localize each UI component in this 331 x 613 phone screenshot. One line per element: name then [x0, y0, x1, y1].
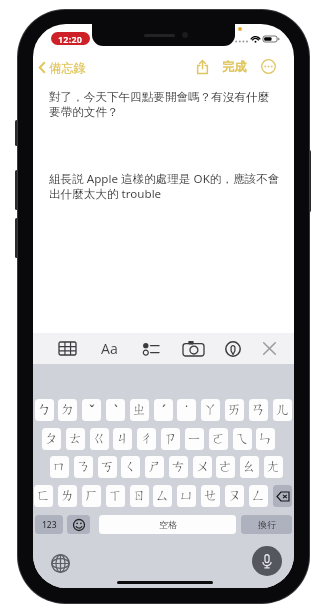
- button[interactable]: ㄙ: [153, 485, 172, 507]
- staticText: 完成: [222, 59, 247, 74]
- button[interactable]: ㄨ: [193, 456, 212, 478]
- button[interactable]: ㄕ: [145, 456, 164, 478]
- button[interactable]: ㄩ: [177, 485, 196, 507]
- button[interactable]: Dictation: [252, 546, 282, 576]
- button[interactable]: ˋ: [106, 399, 125, 421]
- button[interactable]: ㄏ: [82, 485, 101, 507]
- staticText: ˋ: [114, 401, 118, 420]
- staticText: ㄟ: [235, 430, 250, 448]
- staticText: ㄒ: [108, 487, 123, 505]
- button[interactable]: More options: [259, 57, 278, 76]
- staticText: ㄧ: [187, 430, 202, 448]
- staticText: ˊ: [162, 401, 166, 420]
- button[interactable]: ㄜ: [216, 456, 235, 478]
- staticText: ㄔ: [139, 430, 154, 448]
- button[interactable]: ㄝ: [201, 485, 220, 507]
- staticText: ㄛ: [211, 430, 226, 448]
- button[interactable]: 空格: [99, 515, 236, 534]
- staticText: ㄥ: [251, 487, 266, 505]
- button[interactable]: Checklist: [138, 336, 163, 361]
- button[interactable]: ㄡ: [225, 485, 244, 507]
- button[interactable]: ㄢ: [249, 399, 268, 421]
- button[interactable]: ˙: [177, 399, 196, 421]
- button[interactable]: ㄖ: [130, 485, 149, 507]
- staticText: 123: [42, 519, 57, 531]
- button[interactable]: ˇ: [82, 399, 101, 421]
- button[interactable]: ㄇ: [50, 456, 69, 478]
- staticText: ㄑ: [123, 458, 138, 476]
- staticText: 對了，今天下午四點要開會嗎？有沒有什麼 要帶的文件？: [49, 90, 270, 119]
- staticText: ㄌ: [60, 487, 75, 505]
- button[interactable]: ㄑ: [121, 456, 140, 478]
- button[interactable]: 123: [35, 515, 63, 534]
- button[interactable]: ㄈ: [34, 485, 53, 507]
- button[interactable]: ㄦ: [273, 399, 292, 421]
- button[interactable]: ㄔ: [137, 428, 156, 450]
- button[interactable]: 換行: [241, 515, 292, 534]
- staticText: ㄤ: [266, 458, 281, 476]
- button[interactable]: ㄒ: [106, 485, 125, 507]
- staticText: ㄩ: [179, 487, 194, 505]
- staticText: 12:20: [58, 33, 83, 45]
- button[interactable]: ˊ: [154, 399, 173, 421]
- button[interactable]: 備忘錄: [39, 58, 86, 76]
- staticText: ㄢ: [251, 401, 266, 419]
- staticText: Aa: [101, 339, 118, 358]
- button[interactable]: Camera: [181, 336, 206, 361]
- button[interactable]: ㄧ: [185, 428, 204, 450]
- staticText: ㄡ: [227, 487, 242, 505]
- staticText: ㄉ: [60, 401, 75, 419]
- button[interactable]: ㄣ: [256, 428, 275, 450]
- staticText: ㄓ: [132, 401, 147, 419]
- staticText: ㄖ: [132, 487, 147, 505]
- staticText: ㄗ: [163, 430, 178, 448]
- staticText: ㄞ: [227, 401, 242, 419]
- button[interactable]: ㄍ: [90, 428, 109, 450]
- button[interactable]: Markup: [220, 336, 245, 361]
- staticText: ˇ: [89, 401, 95, 420]
- button[interactable]: ㄌ: [58, 485, 77, 507]
- staticText: ㄊ: [68, 430, 83, 448]
- button[interactable]: ㄆ: [42, 428, 61, 450]
- staticText: ㄝ: [203, 487, 218, 505]
- button[interactable]: Switch keyboard: [50, 553, 70, 573]
- button[interactable]: Share: [193, 57, 212, 76]
- staticText: ㄍ: [92, 430, 107, 448]
- staticText: ㄈ: [36, 487, 51, 505]
- button[interactable]: ㄗ: [161, 428, 180, 450]
- button[interactable]: Table: [55, 336, 80, 361]
- staticText: ㄜ: [218, 458, 233, 476]
- staticText: ㄘ: [171, 458, 186, 476]
- button[interactable]: ㄅ: [35, 399, 54, 421]
- button[interactable]: ㄚ: [201, 399, 220, 421]
- staticText: 換行: [258, 519, 276, 530]
- button[interactable]: Close toolbar: [257, 336, 282, 361]
- staticText: ㄣ: [258, 430, 273, 448]
- button[interactable]: ㄊ: [66, 428, 85, 450]
- staticText: ˙: [185, 401, 188, 420]
- button[interactable]: Text format: [97, 336, 122, 361]
- staticText: ㄐ: [115, 430, 130, 448]
- button[interactable]: ㄠ: [240, 456, 259, 478]
- button[interactable]: ㄟ: [233, 428, 252, 450]
- button[interactable]: ㄎ: [98, 456, 117, 478]
- staticText: 備忘錄: [49, 60, 86, 75]
- staticText: ㄦ: [275, 401, 290, 419]
- staticText: ㄨ: [195, 458, 210, 476]
- staticText: 空格: [159, 519, 177, 530]
- button[interactable]: Emoji: [67, 515, 90, 534]
- button[interactable]: Backspace: [273, 485, 292, 507]
- button[interactable]: ㄉ: [58, 399, 77, 421]
- button[interactable]: ㄐ: [113, 428, 132, 450]
- button[interactable]: ㄓ: [130, 399, 149, 421]
- button[interactable]: ㄥ: [249, 485, 268, 507]
- staticText: ㄋ: [76, 458, 91, 476]
- button[interactable]: ㄞ: [225, 399, 244, 421]
- button[interactable]: ㄤ: [264, 456, 283, 478]
- button[interactable]: ㄋ: [74, 456, 93, 478]
- button[interactable]: 完成: [222, 59, 247, 74]
- button[interactable]: ㄛ: [209, 428, 228, 450]
- staticText: ㄚ: [203, 401, 218, 419]
- button[interactable]: ㄘ: [169, 456, 188, 478]
- staticText: ㄏ: [84, 487, 99, 505]
